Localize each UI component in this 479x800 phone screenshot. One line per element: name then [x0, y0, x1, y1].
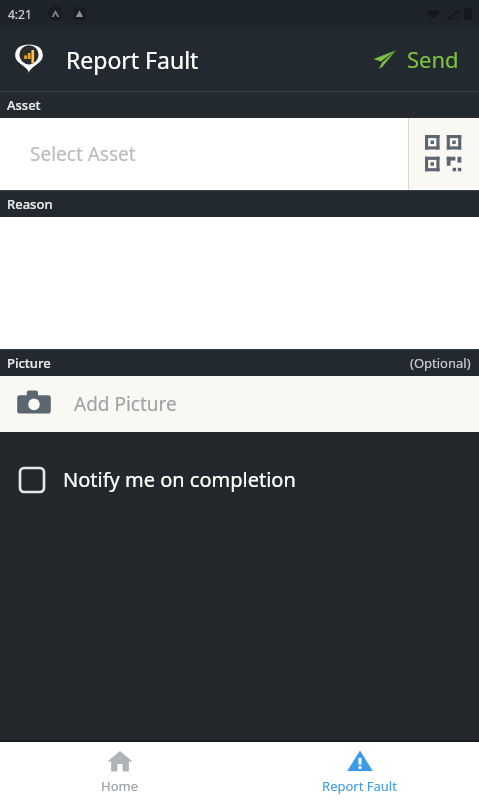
staticText: Send	[407, 44, 459, 74]
button[interactable]: Select Asset	[0, 118, 408, 190]
button[interactable]: Send	[365, 36, 465, 82]
button[interactable]: Scan QR code	[409, 118, 479, 190]
staticText: Add Picture	[74, 391, 177, 417]
staticText: (Optional)	[410, 354, 471, 372]
staticText: Select Asset	[30, 141, 136, 167]
staticText: Report Fault	[322, 777, 397, 795]
staticText: Picture	[7, 354, 51, 372]
staticText: Reason	[7, 195, 53, 213]
staticText: Asset	[7, 96, 41, 114]
button[interactable]: Add Picture	[0, 376, 479, 432]
staticText: Report Fault	[66, 44, 199, 75]
button[interactable]: Notify me on completion	[0, 460, 479, 499]
staticText: Home	[101, 777, 138, 795]
button[interactable]: Report Fault	[239, 742, 479, 800]
staticText: 4:21	[8, 6, 32, 22]
staticText: Notify me on completion	[63, 466, 296, 493]
button[interactable]: Home	[0, 742, 239, 800]
